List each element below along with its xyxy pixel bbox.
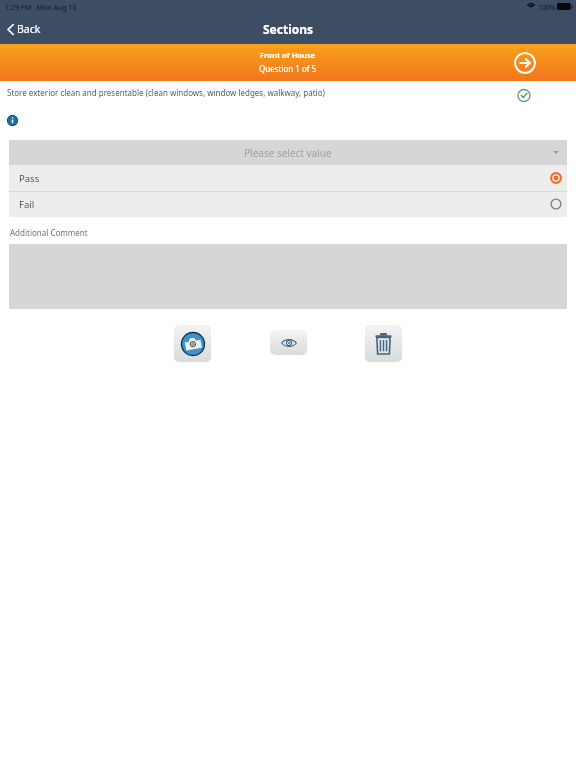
staticText: Additional Comment — [10, 227, 88, 238]
staticText: Question 1 of 5 — [259, 63, 317, 74]
button[interactable]: Information — [3, 111, 21, 129]
staticText: 1:29 PM Mon Aug 10 — [5, 3, 77, 13]
staticText: 100% — [538, 3, 556, 13]
button[interactable]: Fail — [9, 191, 567, 217]
staticText: Sections — [263, 21, 314, 37]
button[interactable]: Next question — [513, 51, 537, 75]
button[interactable]: Please select value — [9, 140, 567, 165]
button[interactable]: Delete — [365, 325, 402, 362]
button[interactable]: View photos — [270, 330, 307, 355]
button[interactable]: Take photo — [174, 325, 211, 362]
button[interactable]: Back — [7, 22, 41, 36]
staticText: Store exterior clean and presentable (cl… — [7, 87, 325, 98]
staticText: Front of House — [260, 50, 316, 60]
staticText: Please select value — [244, 146, 332, 160]
button[interactable]: Pass — [9, 165, 567, 191]
staticText: Back — [17, 22, 41, 36]
staticText: Fail — [19, 198, 35, 211]
staticText: Pass — [19, 172, 40, 185]
